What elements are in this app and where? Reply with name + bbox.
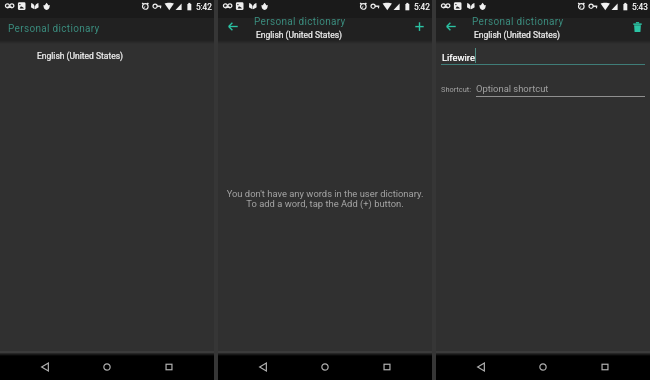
staticText: 5:42	[414, 2, 430, 12]
button[interactable]: Add word	[402, 18, 432, 40]
staticText: Lifewire	[442, 52, 475, 63]
staticText: Personal dictionary	[472, 16, 564, 28]
button[interactable]: Lifewire	[441, 46, 645, 65]
button[interactable]: Recent apps	[583, 356, 627, 380]
staticText: English (United States)	[474, 30, 561, 40]
button[interactable]: Optional shortcut	[476, 79, 645, 97]
staticText: Shortcut:	[441, 85, 471, 94]
button[interactable]: Home	[85, 356, 129, 380]
button[interactable]: Recent apps	[365, 356, 409, 380]
staticText: Personal dictionary	[8, 23, 100, 35]
button[interactable]: Home	[303, 356, 347, 380]
button[interactable]: Home	[521, 356, 565, 380]
button[interactable]: Navigate up	[218, 18, 248, 40]
staticText: 5:42	[196, 2, 212, 12]
staticText: You don't have any words in the user dic…	[218, 188, 432, 210]
button[interactable]: Back	[241, 356, 285, 380]
button[interactable]: Recent apps	[147, 356, 191, 380]
staticText: Optional shortcut	[476, 83, 549, 94]
button[interactable]: English (United States)	[0, 47, 214, 67]
button[interactable]: Back	[459, 356, 503, 380]
button[interactable]: Navigate up	[436, 18, 466, 40]
staticText: English (United States)	[37, 51, 124, 61]
button[interactable]: Back	[23, 356, 67, 380]
button[interactable]: Delete	[622, 18, 650, 40]
staticText: 5:43	[632, 2, 648, 12]
staticText: English (United States)	[256, 30, 343, 40]
staticText: Personal dictionary	[254, 16, 346, 28]
